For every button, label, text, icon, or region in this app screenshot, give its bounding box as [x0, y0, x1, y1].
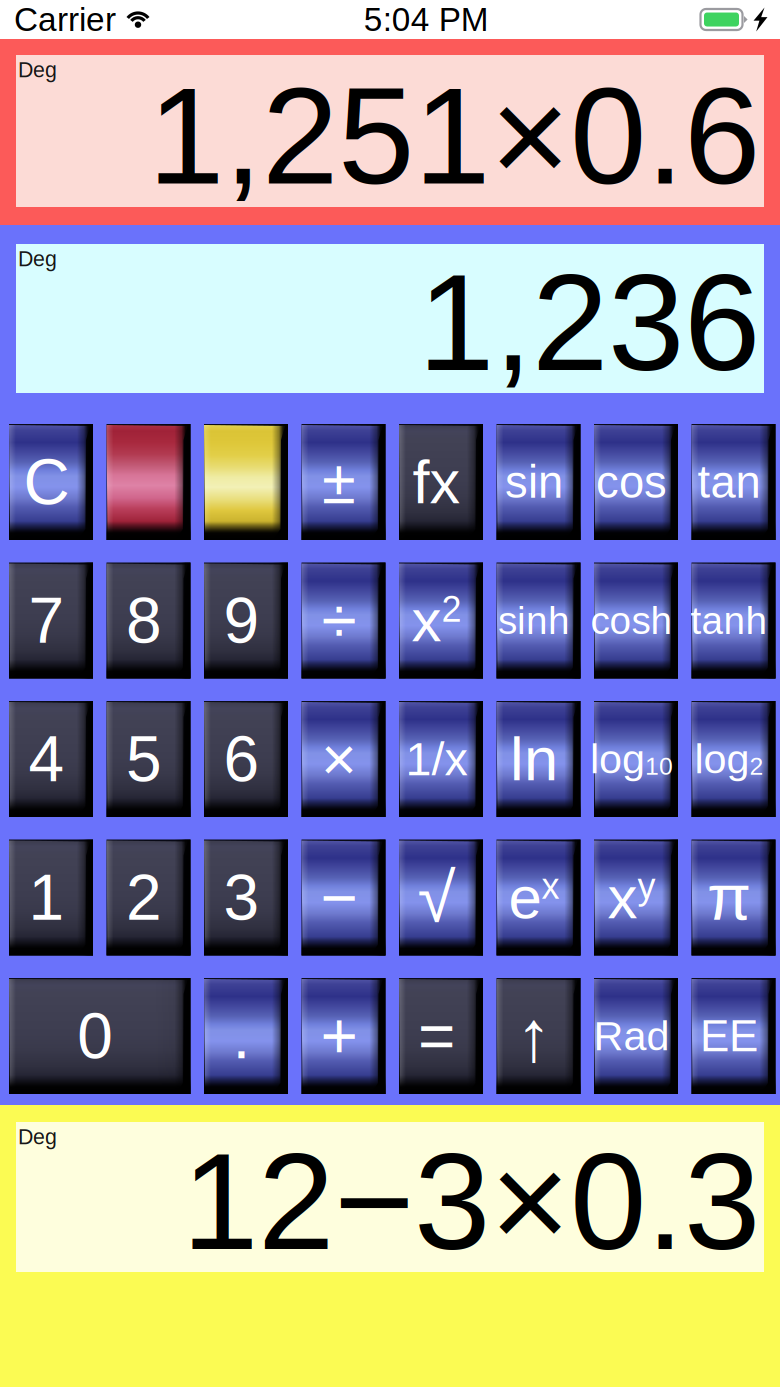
staticText: + [320, 1000, 357, 1072]
staticText: = [418, 1000, 455, 1072]
staticText: Rad [593, 1013, 669, 1059]
button[interactable]: 1/x [399, 701, 483, 817]
staticText: 9 [223, 585, 259, 656]
button[interactable]: x to the y [594, 839, 678, 955]
staticText: tan [697, 457, 760, 507]
staticText: 1,251×0.6 [148, 59, 760, 213]
button[interactable]: Memory yellow [204, 424, 288, 540]
staticText: Deg [18, 247, 57, 271]
staticText: Carrier [14, 1, 116, 38]
button[interactable]: cosh [594, 562, 678, 678]
staticText: 3 [223, 862, 259, 933]
staticText: √ [417, 859, 455, 936]
button[interactable]: Memory red [106, 424, 190, 540]
button[interactable]: sin [496, 424, 580, 540]
button[interactable]: log base 2 [691, 701, 775, 817]
staticText: cosh [590, 599, 672, 642]
button[interactable]: 9 [204, 562, 288, 678]
button[interactable]: − [301, 839, 385, 955]
button[interactable]: tanh [691, 562, 775, 678]
staticText: 0 [77, 1000, 113, 1072]
staticText: − [320, 862, 357, 933]
staticText: ÷ [321, 585, 356, 656]
staticText: C [23, 446, 69, 518]
staticText: log [590, 736, 645, 782]
staticText: Deg [18, 58, 57, 82]
staticText: 8 [126, 585, 162, 656]
button[interactable]: 8 [106, 562, 190, 678]
button[interactable]: ln [496, 701, 580, 817]
staticText: 1/x [405, 733, 467, 785]
staticText: 10 [645, 752, 673, 780]
staticText: ln [510, 725, 558, 793]
button[interactable]: fx [399, 424, 483, 540]
button[interactable]: C [9, 424, 93, 540]
staticText: 1 [28, 862, 64, 933]
staticText: π [707, 862, 751, 933]
button[interactable]: cos [594, 424, 678, 540]
button[interactable]: Enter [496, 978, 580, 1094]
button[interactable]: sinh [496, 562, 580, 678]
button[interactable]: e to the x [496, 839, 580, 955]
staticText: 1,236 [418, 246, 760, 399]
button[interactable]: tan [691, 424, 775, 540]
staticText: fx [412, 448, 460, 516]
staticText: 2 [126, 862, 162, 933]
button[interactable]: 1 [9, 839, 93, 955]
button[interactable]: × [301, 701, 385, 817]
staticText: . [232, 1000, 250, 1072]
button[interactable]: 7 [9, 562, 93, 678]
button[interactable]: π [691, 839, 775, 955]
button[interactable]: log base 10 [594, 701, 678, 817]
staticText: log [694, 736, 749, 782]
staticText: 2 [441, 589, 461, 629]
staticText: 4 [28, 723, 64, 795]
button[interactable]: + [301, 978, 385, 1094]
button[interactable]: EE [691, 978, 775, 1094]
staticText: x [607, 864, 637, 931]
button[interactable]: Rad [594, 978, 678, 1094]
staticText: 12−3×0.3 [182, 1125, 760, 1278]
staticText: 5 [126, 723, 162, 795]
staticText: y [637, 866, 655, 906]
staticText: sinh [498, 599, 570, 642]
button[interactable]: = [399, 978, 483, 1094]
button[interactable]: 2 [106, 839, 190, 955]
button[interactable]: ± [301, 424, 385, 540]
staticText: ± [322, 448, 356, 516]
staticText: EE [700, 1011, 758, 1061]
button[interactable]: ÷ [301, 562, 385, 678]
staticText: 6 [223, 723, 259, 795]
staticText: Deg [18, 1125, 57, 1149]
button[interactable]: x squared [399, 562, 483, 678]
button[interactable]: 3 [204, 839, 288, 955]
button[interactable]: . [204, 978, 288, 1094]
staticText: x [541, 866, 559, 906]
staticText: × [321, 725, 357, 793]
staticText: tanh [690, 599, 767, 642]
staticText: x [411, 587, 441, 654]
staticText: ↑ [516, 996, 552, 1076]
button[interactable]: 4 [9, 701, 93, 817]
staticText: 7 [28, 585, 64, 656]
staticText: sin [505, 457, 563, 507]
staticText: 2 [749, 752, 763, 780]
button[interactable]: 0 [9, 978, 190, 1094]
staticText: cos [596, 457, 667, 507]
button[interactable]: 5 [106, 701, 190, 817]
staticText: 5:04 PM [364, 1, 489, 38]
button[interactable]: √ [399, 839, 483, 955]
staticText: e [508, 864, 541, 931]
button[interactable]: 6 [204, 701, 288, 817]
